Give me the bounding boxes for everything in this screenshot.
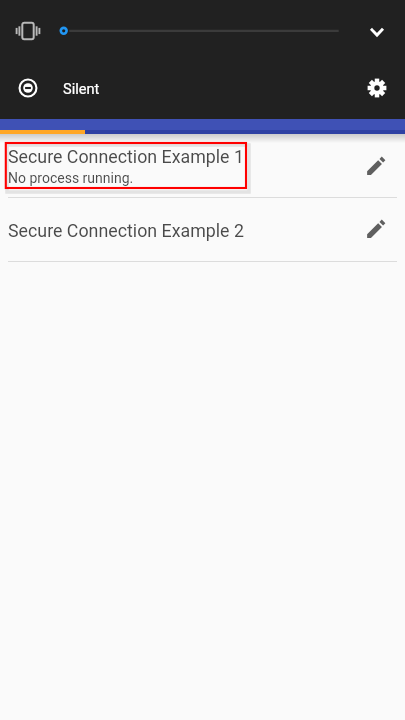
button[interactable]: Settings (357, 68, 397, 108)
button[interactable]: Volume (52, 13, 352, 49)
staticText: Secure Connection Example 1 (8, 146, 244, 167)
button[interactable]: Edit (355, 209, 395, 249)
button[interactable]: Edit (355, 146, 395, 186)
staticText: Secure Connection Example 2 (8, 220, 244, 241)
button[interactable]: Silent (55, 68, 175, 108)
button[interactable]: Vibrate (8, 11, 48, 51)
staticText: Silent (63, 80, 100, 97)
button[interactable]: Secure Connection Example 2 (0, 198, 405, 261)
button[interactable]: Silent mode (8, 68, 48, 108)
staticText: No process running. (8, 170, 134, 186)
button[interactable]: Secure Connection Example 1 (0, 137, 405, 197)
button[interactable]: Collapse (357, 11, 397, 51)
